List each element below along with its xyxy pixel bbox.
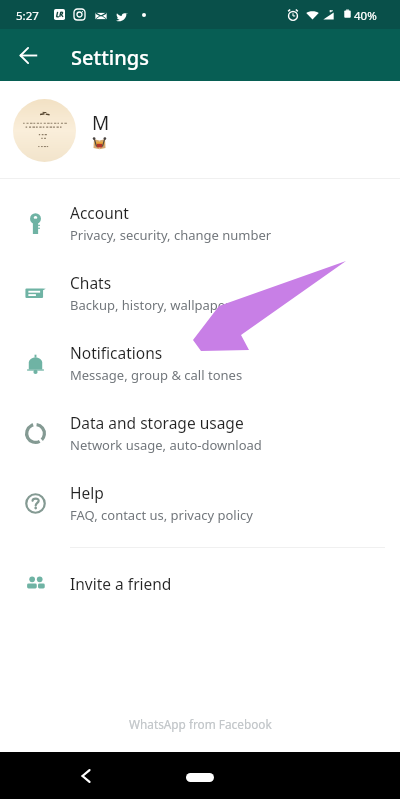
- button[interactable]: Account: [0, 188, 400, 258]
- button[interactable]: Invite a friend: [0, 548, 400, 618]
- button[interactable]: Back: [4, 31, 52, 79]
- staticText: Data and storage usage: [70, 412, 244, 433]
- staticText: Account: [70, 202, 129, 223]
- button[interactable]: Help: [0, 468, 400, 538]
- staticText: Help: [70, 482, 104, 503]
- button[interactable]: Notifications: [0, 328, 400, 398]
- staticText: Chats: [70, 272, 112, 293]
- staticText: Settings: [71, 44, 149, 71]
- button[interactable]: Home: [186, 773, 214, 782]
- staticText: Message, group & call tones: [70, 366, 243, 384]
- staticText: Invite a friend: [70, 573, 172, 594]
- staticText: Privacy, security, change number: [70, 226, 272, 244]
- button[interactable]: Data and storage usage: [0, 398, 400, 468]
- staticText: FAQ, contact us, privacy policy: [70, 506, 253, 524]
- staticText: 40%: [354, 8, 377, 24]
- staticText: WhatsApp from Facebook: [129, 716, 272, 732]
- button[interactable]: M: [0, 81, 400, 178]
- button[interactable]: Chats: [0, 258, 400, 328]
- button[interactable]: Back: [75, 765, 97, 787]
- staticText: Network usage, auto-download: [70, 436, 262, 454]
- staticText: 5:27: [16, 8, 39, 24]
- staticText: Backup, history, wallpaper: [70, 296, 231, 314]
- staticText: Notifications: [70, 342, 163, 363]
- staticText: M: [92, 110, 110, 136]
